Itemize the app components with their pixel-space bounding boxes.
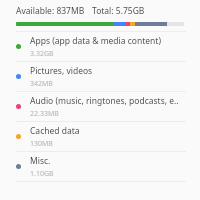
staticText: 1.10GB (30, 169, 54, 179)
staticText: 22.33MB (30, 109, 59, 119)
button[interactable]: Audio (music, ringtones, podcasts, e.. (0, 92, 200, 121)
button[interactable]: Cached data (0, 122, 200, 151)
staticText: Cached data (30, 125, 80, 137)
staticText: Apps (app data & media content) (30, 35, 161, 47)
staticText: 342MB (30, 79, 53, 89)
staticText: Total: 5.75GB (92, 5, 145, 17)
staticText: Pictures, videos (30, 65, 93, 77)
button[interactable]: Misc. (0, 152, 200, 181)
staticText: Audio (music, ringtones, podcasts, e.. (30, 95, 179, 107)
staticText: 3.32GB (30, 49, 54, 59)
button[interactable]: Pictures, videos (0, 62, 200, 91)
staticText: Available: 837MB (16, 5, 85, 17)
button[interactable]: Apps (app data & media content) (0, 32, 200, 61)
staticText: Misc. (30, 155, 51, 167)
staticText: 130MB (30, 139, 53, 149)
